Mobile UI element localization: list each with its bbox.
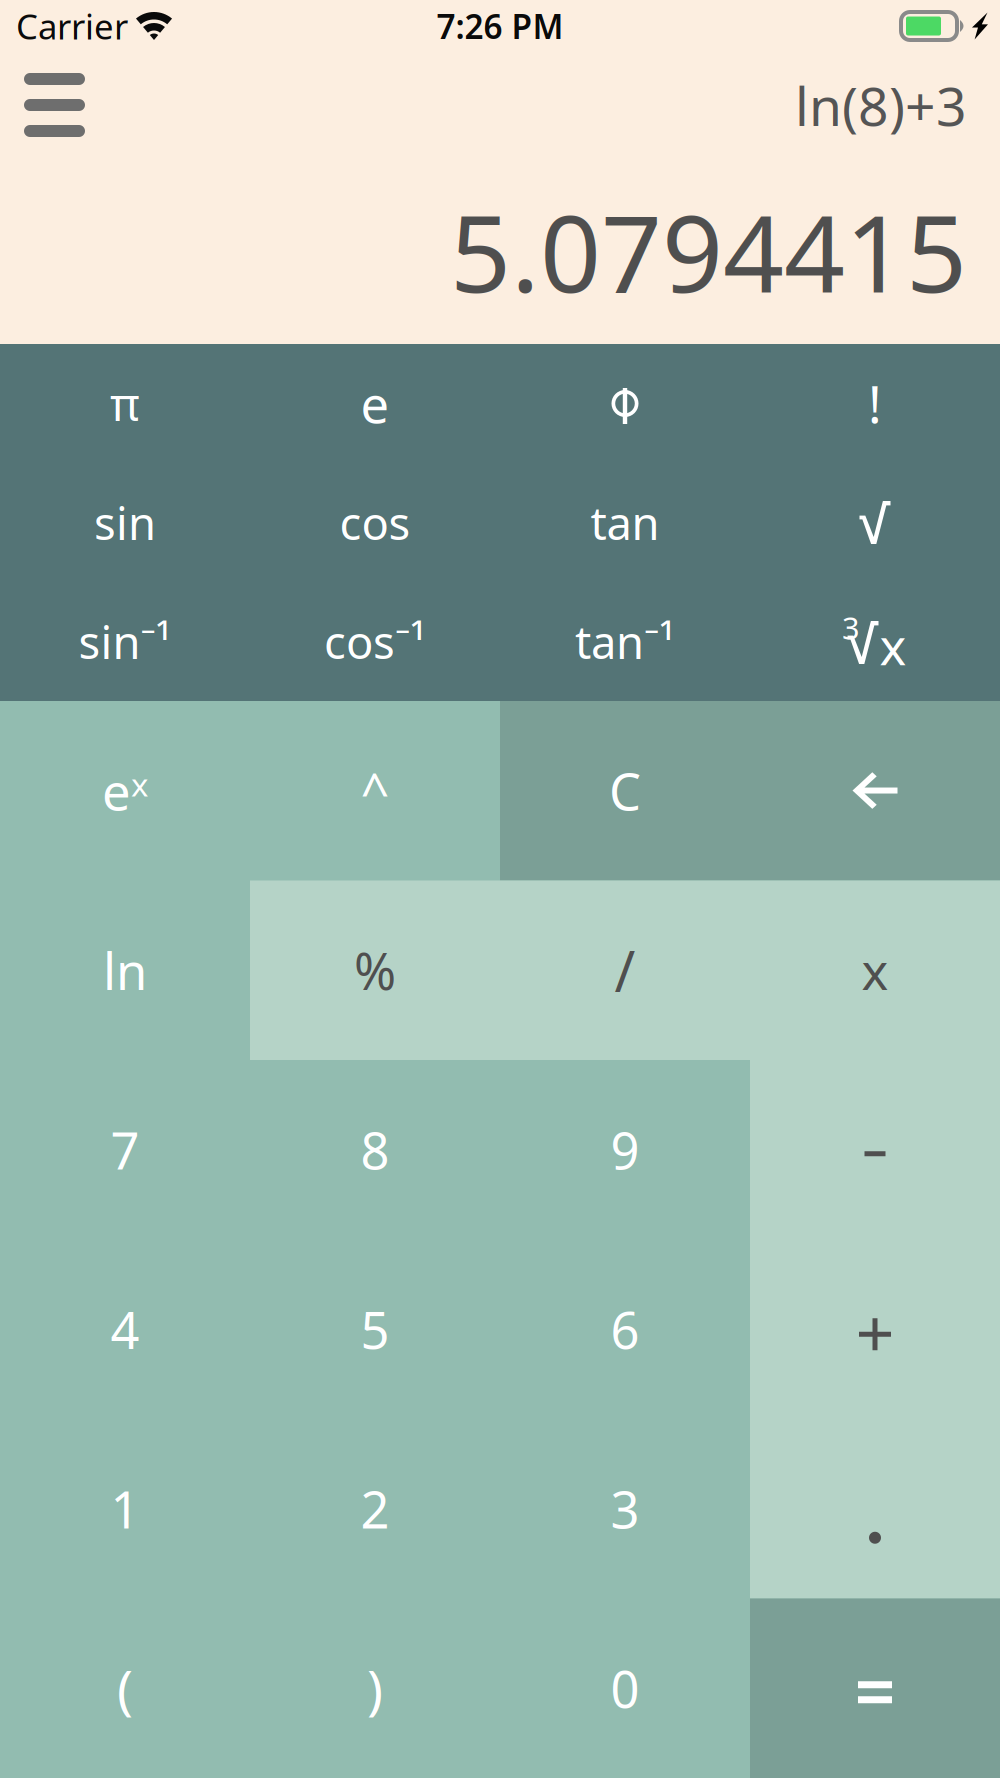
button[interactable]: tan⁻¹ <box>500 582 750 701</box>
button[interactable]: eˣ <box>0 701 250 880</box>
staticText: cos <box>339 492 410 553</box>
button[interactable]: 6 <box>500 1239 750 1419</box>
button[interactable]: π <box>0 344 250 463</box>
staticText: ( <box>117 1653 133 1724</box>
button[interactable]: C <box>500 701 750 880</box>
staticText: tan⁻¹ <box>575 611 675 672</box>
button[interactable]: Minus <box>750 1060 1000 1239</box>
button[interactable]: Decimal point <box>750 1419 1000 1598</box>
staticText: % <box>354 937 396 1004</box>
button[interactable]: e <box>250 344 500 463</box>
button[interactable]: / <box>500 880 750 1060</box>
button[interactable]: 3 <box>500 1419 750 1598</box>
staticText: ! <box>868 370 882 437</box>
button[interactable]: 8 <box>250 1060 500 1239</box>
staticText: 7 <box>110 1116 139 1183</box>
staticText: 5 <box>360 1296 389 1363</box>
staticText: ) <box>367 1653 383 1724</box>
button[interactable]: Delete <box>750 701 1000 880</box>
staticText: 3 <box>610 1475 639 1542</box>
staticText: 2 <box>360 1475 389 1542</box>
button[interactable]: ( <box>0 1598 250 1778</box>
staticText: eˣ <box>102 757 148 824</box>
staticText: tan <box>590 492 659 553</box>
button[interactable]: tan <box>500 463 750 582</box>
staticText: 4 <box>110 1296 139 1363</box>
button[interactable]: 9 <box>500 1060 750 1239</box>
button[interactable]: x <box>750 880 1000 1060</box>
button[interactable]: Square root <box>750 463 1000 582</box>
staticText: Carrier <box>16 3 128 49</box>
staticText: sin⁻¹ <box>78 611 171 672</box>
staticText: 9 <box>610 1116 639 1183</box>
staticText: cos⁻¹ <box>324 611 426 672</box>
staticText: π <box>110 373 140 434</box>
button[interactable]: 1 <box>0 1419 250 1598</box>
staticText: x <box>861 937 888 1004</box>
button[interactable]: Cube root <box>750 582 1000 701</box>
staticText: C <box>609 757 641 824</box>
button[interactable]: Menu <box>0 52 85 136</box>
staticText: x <box>879 612 906 679</box>
button[interactable]: cos⁻¹ <box>250 582 500 701</box>
button[interactable]: % <box>250 880 500 1060</box>
button[interactable]: Equals <box>750 1598 1000 1778</box>
staticText: 0 <box>610 1655 639 1722</box>
button[interactable]: ) <box>250 1598 500 1778</box>
button[interactable]: Plus <box>750 1239 1000 1419</box>
button[interactable]: ln <box>0 880 250 1060</box>
staticText: e <box>360 370 389 437</box>
staticText: 5.0794415 <box>450 180 967 322</box>
staticText: 8 <box>360 1116 389 1183</box>
button[interactable]: sin <box>0 463 250 582</box>
button[interactable]: 2 <box>250 1419 500 1598</box>
button[interactable]: 4 <box>0 1239 250 1419</box>
staticText: 1 <box>110 1475 139 1542</box>
staticText: ln(8)+3 <box>795 70 967 141</box>
button[interactable]: ! <box>750 344 1000 463</box>
button[interactable]: sin⁻¹ <box>0 582 250 701</box>
staticText: 3 <box>842 607 860 648</box>
staticText: / <box>614 933 635 1007</box>
staticText: ^ <box>360 757 389 824</box>
button[interactable]: phi <box>500 344 750 463</box>
button[interactable]: ^ <box>250 701 500 880</box>
button[interactable]: 0 <box>500 1598 750 1778</box>
staticText: ln <box>103 937 147 1004</box>
staticText: 6 <box>610 1296 639 1363</box>
staticText: 7:26 PM <box>436 4 563 48</box>
button[interactable]: 5 <box>250 1239 500 1419</box>
button[interactable]: 7 <box>0 1060 250 1239</box>
staticText: sin <box>94 492 156 553</box>
button[interactable]: cos <box>250 463 500 582</box>
